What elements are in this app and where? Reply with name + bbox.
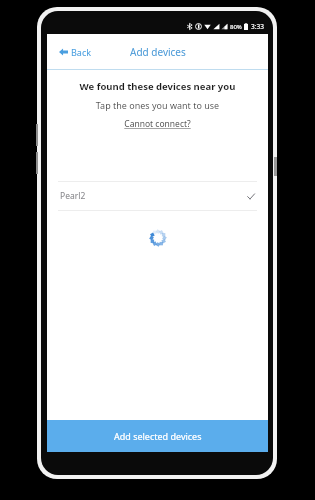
button[interactable]: Pearl2 [47, 182, 268, 210]
button[interactable]: Cannot connect? [120, 117, 195, 131]
staticText: 80% [230, 23, 242, 31]
staticText: We found these devices near you [47, 80, 268, 93]
staticText: 3:33 [251, 22, 264, 31]
staticText: Pearl2 [60, 190, 86, 202]
staticText: Add devices [130, 45, 186, 59]
staticText: Add selected devices [114, 430, 202, 442]
staticText: Tap the ones you want to use [47, 99, 268, 111]
staticText: Back [71, 46, 92, 58]
button[interactable]: Add selected devices [47, 420, 268, 452]
button[interactable]: Back [55, 42, 96, 62]
